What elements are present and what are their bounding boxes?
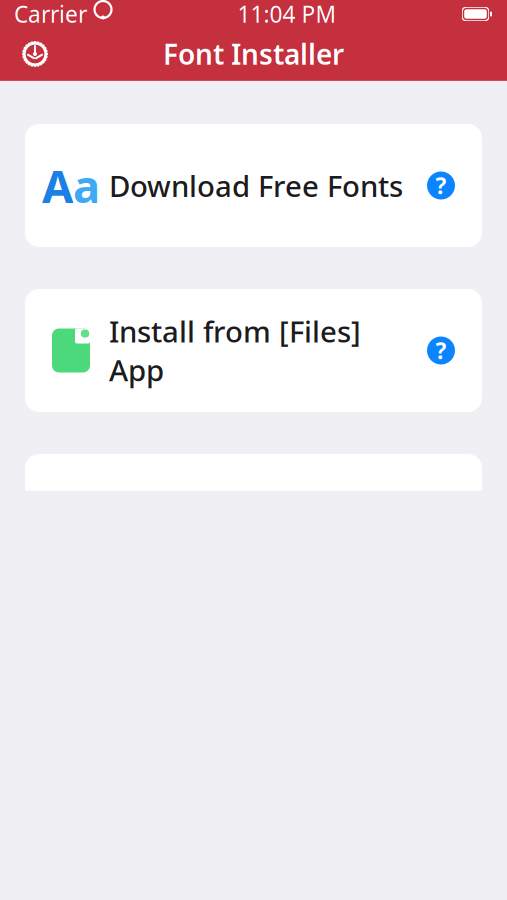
button[interactable]: Settings <box>12 31 58 77</box>
staticText: ? <box>435 335 446 365</box>
staticText: A <box>42 155 73 216</box>
button[interactable]: Install from [Files] App <box>25 289 482 412</box>
staticText: Font Installer <box>163 35 344 73</box>
button[interactable]: A <box>25 124 482 247</box>
staticText: Download Free Fonts <box>109 166 403 205</box>
staticText: ? <box>435 170 446 200</box>
staticText: Carrier <box>14 0 87 29</box>
staticText: Install from [Files] App <box>109 311 361 389</box>
staticText: a <box>73 155 100 216</box>
button[interactable]: Install from Email <box>25 454 482 577</box>
staticText: 11:04 PM <box>237 0 336 29</box>
